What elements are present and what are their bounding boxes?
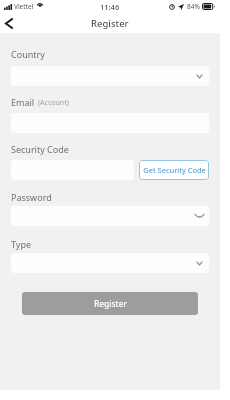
button[interactable] xyxy=(11,253,209,273)
button[interactable] xyxy=(11,66,209,86)
staticText: Password xyxy=(11,191,52,203)
staticText: Email xyxy=(11,96,35,108)
button[interactable] xyxy=(11,206,209,226)
staticText: Register xyxy=(91,17,129,30)
staticText: Register xyxy=(94,298,127,310)
button[interactable]: Get Security Code xyxy=(139,160,209,180)
staticText: Security Code xyxy=(11,143,69,155)
staticText: Get Security Code xyxy=(143,165,206,175)
staticText: (Account) xyxy=(38,98,69,108)
staticText: 11:46 xyxy=(100,2,120,12)
button[interactable]: Back xyxy=(0,13,20,33)
staticText: 84% xyxy=(187,2,200,11)
staticText: Viettel xyxy=(14,2,34,11)
button[interactable]: Register xyxy=(22,292,198,315)
staticText: Country xyxy=(11,48,45,60)
staticText: Type xyxy=(11,238,32,250)
